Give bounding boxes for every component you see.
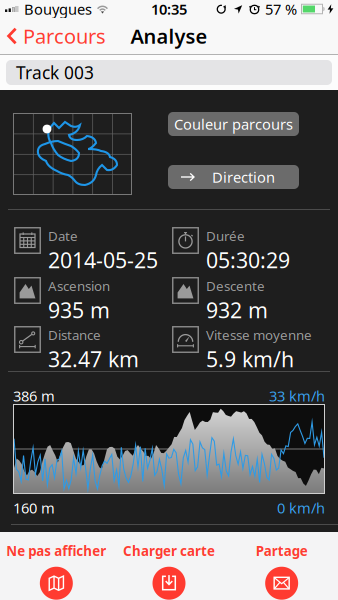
staticText: 05:30:29 (206, 246, 290, 274)
staticText: 935 m (48, 296, 110, 324)
button[interactable]: Track name (0, 60, 338, 85)
staticText: Charger carte (123, 542, 215, 560)
staticText: Bouygues (24, 0, 92, 19)
staticText: Couleur parcours (174, 114, 293, 134)
staticText: Parcours (23, 23, 106, 49)
staticText: Ne pas afficher (6, 542, 106, 560)
staticText: 32.47 km (48, 345, 139, 373)
staticText: Direction (212, 167, 275, 187)
button[interactable]: Partage (225, 542, 338, 600)
staticText: 0 km/h (277, 498, 325, 517)
staticText: Vitesse moyenne (206, 326, 312, 344)
staticText: 160 m (13, 498, 55, 517)
staticText: Partage (256, 542, 308, 560)
button[interactable]: Couleur parcours (168, 112, 299, 136)
staticText: 57 % (265, 0, 297, 19)
staticText: Track 003 (16, 61, 94, 84)
button[interactable]: Parcours (0, 23, 106, 49)
staticText: 5.9 km/h (206, 345, 294, 373)
staticText: 386 m (13, 386, 55, 405)
staticText: Durée (206, 227, 245, 245)
button[interactable]: Charger carte (113, 542, 225, 600)
staticText: 10:35 (151, 0, 187, 19)
staticText: 2014-05-25 (48, 246, 158, 274)
staticText: 932 m (206, 296, 268, 324)
staticText: 33 km/h (269, 386, 325, 405)
staticText: Analyse (130, 23, 207, 49)
button[interactable]: Direction (168, 165, 299, 189)
staticText: Ascension (48, 277, 110, 295)
staticText: Date (48, 227, 78, 245)
button[interactable]: Ne pas afficher (0, 542, 113, 600)
staticText: Descente (206, 277, 265, 295)
staticText: Distance (48, 326, 101, 344)
